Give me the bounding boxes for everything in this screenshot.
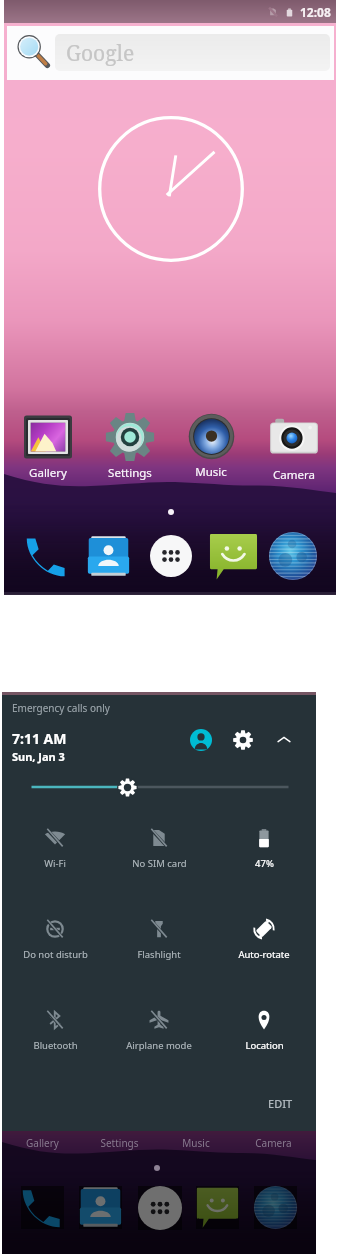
button[interactable]: Phone	[21, 1186, 64, 1229]
staticText: Gallery	[26, 1136, 59, 1150]
button[interactable]: All apps	[143, 528, 199, 584]
button[interactable]: Browser	[254, 1186, 297, 1229]
button[interactable]: Bluetooth	[3, 1009, 107, 1052]
button[interactable]: Phone	[19, 528, 75, 584]
button[interactable]: User	[186, 725, 216, 755]
button[interactable]: Airplane mode	[107, 1009, 211, 1052]
staticText: Airplane mode	[126, 1039, 192, 1052]
button[interactable]: Contacts	[79, 1186, 122, 1229]
button[interactable]: Music	[171, 412, 251, 480]
button[interactable]: Google	[7, 26, 334, 80]
staticText: Settings	[100, 1136, 139, 1150]
button[interactable]: Gallery	[8, 412, 88, 481]
staticText: 12:08	[300, 4, 331, 20]
button[interactable]: Flashlight	[107, 918, 211, 961]
button[interactable]: Messaging	[196, 1186, 239, 1229]
button[interactable]: All apps	[138, 1186, 182, 1230]
staticText: 7:11 AM	[12, 729, 67, 748]
button[interactable]: Browser	[265, 528, 321, 584]
staticText: EDIT	[268, 1096, 293, 1111]
button[interactable]: Messaging	[205, 528, 261, 584]
button[interactable]: 47%	[212, 827, 316, 870]
staticText: No SIM card	[132, 857, 187, 870]
staticText: Camera	[255, 1136, 292, 1150]
staticText: Location	[245, 1039, 284, 1052]
staticText: Camera	[273, 467, 315, 483]
button[interactable]: Wi-Fi	[3, 827, 107, 870]
staticText: Gallery	[29, 465, 67, 481]
staticText: Flashlight	[137, 948, 181, 961]
button[interactable]: Settings	[90, 412, 170, 481]
staticText: Emergency calls only	[12, 701, 110, 715]
staticText: Sun, Jan 3	[12, 749, 65, 764]
staticText: Bluetooth	[33, 1039, 78, 1052]
button[interactable]: EDIT	[258, 1091, 303, 1116]
button[interactable]: Do not disturb	[3, 918, 107, 961]
button[interactable]: Collapse	[269, 725, 299, 755]
staticText: Auto-rotate	[238, 948, 290, 961]
staticText: Settings	[108, 465, 152, 481]
button[interactable]: Open settings	[228, 725, 258, 755]
button[interactable]: Auto-rotate	[212, 918, 316, 961]
staticText: 47%	[255, 857, 274, 870]
staticText: Google	[66, 39, 135, 68]
button[interactable]: Contacts	[80, 528, 136, 584]
staticText: Music	[182, 1136, 210, 1150]
button[interactable]: Location	[212, 1009, 316, 1052]
staticText: Wi-Fi	[44, 857, 66, 870]
staticText: Do not disturb	[23, 948, 88, 961]
button[interactable]: No SIM card	[107, 827, 211, 870]
button[interactable]: Camera	[254, 412, 334, 483]
staticText: Music	[195, 464, 227, 480]
